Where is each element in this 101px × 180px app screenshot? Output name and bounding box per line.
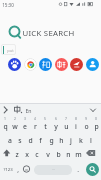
staticText: 4 (34, 116, 36, 121)
button[interactable] (55, 58, 68, 71)
button[interactable]: x (22, 148, 32, 160)
staticText: put (7, 48, 14, 54)
staticText: 2 (14, 116, 16, 121)
staticText: h (59, 136, 64, 145)
staticText: w (12, 122, 18, 131)
staticText: l (90, 136, 92, 145)
staticText: b (56, 150, 61, 159)
staticText: 1 (4, 116, 6, 121)
button[interactable]: y (51, 120, 61, 132)
button[interactable]: h (56, 134, 66, 146)
staticText: , (17, 165, 19, 174)
button[interactable]: i (71, 120, 81, 132)
staticText: m (75, 150, 82, 159)
staticText: ··· (52, 168, 55, 172)
button[interactable] (24, 58, 37, 71)
staticText: o (84, 122, 89, 131)
button[interactable]: p (91, 120, 101, 132)
staticText: d (28, 136, 33, 145)
staticText: e (23, 122, 27, 131)
button[interactable]: o (81, 120, 91, 132)
button[interactable]: , (14, 163, 22, 175)
button[interactable]: b (53, 148, 63, 160)
staticText: p (94, 122, 99, 131)
button[interactable] (70, 58, 83, 71)
button[interactable]: a (5, 134, 15, 146)
staticText: a (8, 136, 12, 145)
button[interactable]: g (46, 134, 56, 146)
staticText: 6 (55, 116, 57, 121)
button[interactable]: k (76, 134, 86, 146)
staticText: ?123 (3, 166, 13, 172)
button[interactable]: q (0, 120, 10, 132)
button[interactable]: e (20, 120, 30, 132)
staticText: 5 (44, 116, 46, 121)
button[interactable]: f (35, 134, 45, 146)
staticText: u (64, 122, 69, 131)
button[interactable]: z (12, 148, 22, 160)
staticText: x (25, 150, 29, 159)
button[interactable]: l (86, 134, 96, 146)
button[interactable]: En (23, 106, 33, 114)
staticText: g (49, 136, 54, 145)
button[interactable]: c (32, 148, 42, 160)
button[interactable]: w (10, 120, 20, 132)
staticText: r (34, 122, 37, 131)
button[interactable] (84, 147, 98, 159)
staticText: q (3, 122, 8, 131)
button[interactable]: r (30, 120, 40, 132)
staticText: z (15, 150, 19, 159)
button[interactable]: t (40, 120, 50, 132)
staticText: y (54, 122, 58, 131)
button[interactable]: ?123 (2, 163, 14, 175)
button[interactable] (1, 147, 13, 159)
button[interactable]: v (43, 148, 53, 160)
staticText: En (25, 107, 32, 114)
button[interactable] (86, 163, 99, 176)
button[interactable]: n (63, 148, 73, 160)
staticText: . (77, 165, 79, 174)
staticText: f (39, 136, 42, 145)
staticText: 15:30 (2, 2, 14, 8)
staticText: c (35, 150, 39, 159)
button[interactable] (1, 44, 16, 55)
staticText: n (66, 150, 71, 159)
staticText: UICK SEARCH (22, 28, 75, 39)
button[interactable]: d (25, 134, 35, 146)
button[interactable] (39, 58, 52, 71)
staticText: 8 (75, 116, 77, 121)
staticText: k (79, 136, 83, 145)
button[interactable]: s (15, 134, 25, 146)
staticText: t (44, 122, 47, 131)
button[interactable] (0, 104, 12, 116)
staticText: s (18, 136, 22, 145)
staticText: 9 (85, 116, 87, 121)
button[interactable]: . (74, 163, 82, 175)
staticText: i (75, 122, 77, 131)
button[interactable] (87, 104, 99, 116)
button[interactable] (86, 58, 99, 71)
staticText: 3 (24, 116, 26, 121)
button[interactable]: j (66, 134, 76, 146)
button[interactable] (13, 104, 23, 116)
button[interactable] (8, 58, 21, 71)
staticText: v (46, 150, 50, 159)
button[interactable]: ··· (34, 165, 72, 175)
staticText: 7 (65, 116, 67, 121)
staticText: j (70, 136, 72, 145)
staticText: 0 (95, 116, 97, 121)
button[interactable]: m (73, 148, 83, 160)
button[interactable] (22, 163, 31, 175)
button[interactable]: u (61, 120, 71, 132)
